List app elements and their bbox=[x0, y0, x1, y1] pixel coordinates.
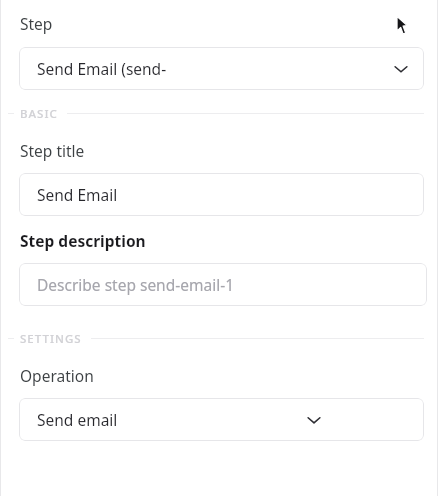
staticText: Send Email bbox=[37, 184, 118, 205]
staticText: SETTINGS bbox=[20, 331, 82, 345]
staticText: BASIC bbox=[20, 106, 58, 120]
button[interactable]: Select operation bbox=[19, 398, 424, 441]
button[interactable]: Select step bbox=[19, 47, 424, 90]
staticText: Step description bbox=[20, 230, 146, 251]
staticText: Step title bbox=[20, 140, 85, 161]
staticText: Send Email (send-email-1) bbox=[37, 58, 205, 79]
button[interactable]: Describe step send-email-1 bbox=[19, 263, 427, 306]
button[interactable]: Send Email bbox=[19, 173, 424, 216]
staticText: Operation bbox=[20, 365, 94, 386]
staticText: Send email bbox=[37, 409, 118, 430]
staticText: Step bbox=[20, 13, 53, 34]
staticText: Describe step send-email-1 bbox=[37, 274, 235, 295]
